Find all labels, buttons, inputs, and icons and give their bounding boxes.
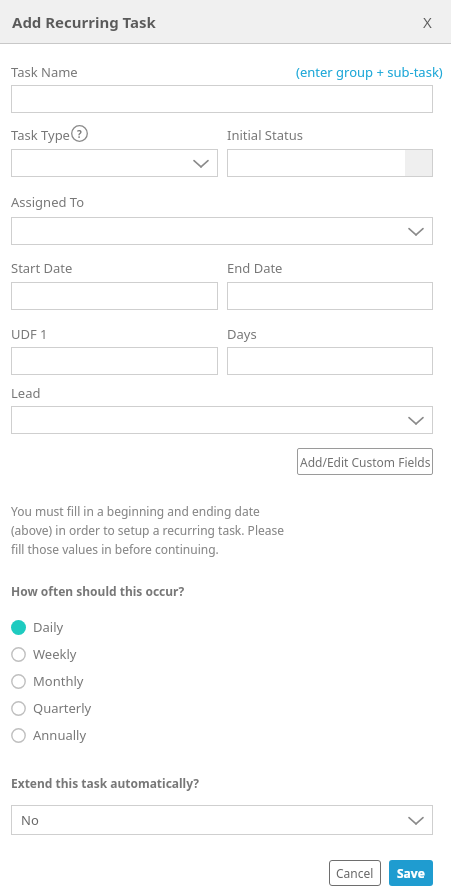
button[interactable]: [227, 347, 433, 375]
button[interactable]: [11, 149, 218, 177]
button[interactable]: Task Type help: [71, 125, 88, 142]
staticText: You must fill in a beginning and ending …: [11, 503, 296, 557]
staticText: Daily: [33, 618, 64, 636]
button[interactable]: Daily: [11, 616, 161, 638]
staticText: Add Recurring Task: [12, 12, 156, 32]
button[interactable]: [11, 217, 433, 245]
button[interactable]: Quarterly: [11, 697, 161, 719]
button[interactable]: Cancel: [329, 860, 381, 886]
button[interactable]: [227, 149, 433, 177]
button[interactable]: [11, 347, 218, 375]
staticText: Weekly: [33, 645, 77, 663]
staticText: Initial Status: [227, 126, 303, 144]
staticText: Quarterly: [33, 699, 92, 717]
button[interactable]: No: [11, 805, 433, 835]
button[interactable]: (enter group + sub-task): [296, 63, 443, 81]
staticText: Assigned To: [11, 193, 85, 211]
button[interactable]: Monthly: [11, 670, 161, 692]
staticText: End Date: [227, 259, 283, 277]
button[interactable]: Save: [389, 860, 433, 886]
staticText: Start Date: [11, 259, 73, 277]
staticText: Add/Edit Custom Fields: [300, 454, 431, 470]
button[interactable]: [11, 85, 433, 113]
staticText: Annually: [33, 726, 87, 744]
staticText: Lead: [11, 384, 41, 402]
staticText: UDF 1: [11, 325, 48, 343]
button[interactable]: [11, 282, 218, 310]
staticText: Cancel: [336, 865, 374, 881]
staticText: Task Type: [11, 126, 70, 144]
button[interactable]: Annually: [11, 724, 161, 746]
staticText: No: [21, 811, 39, 829]
staticText: (enter group + sub-task): [296, 63, 443, 81]
staticText: Extend this task automatically?: [11, 775, 199, 791]
button[interactable]: Add/Edit Custom Fields: [297, 448, 433, 475]
staticText: Monthly: [33, 672, 84, 690]
button[interactable]: [227, 282, 433, 310]
staticText: Save: [397, 865, 425, 881]
button[interactable]: Close: [411, 6, 443, 38]
staticText: Days: [227, 325, 257, 343]
button[interactable]: Weekly: [11, 643, 161, 665]
button[interactable]: [11, 406, 433, 434]
staticText: Task Name: [11, 63, 78, 81]
staticText: X: [423, 12, 432, 32]
staticText: ?: [77, 127, 82, 141]
staticText: How often should this occur?: [11, 583, 185, 599]
